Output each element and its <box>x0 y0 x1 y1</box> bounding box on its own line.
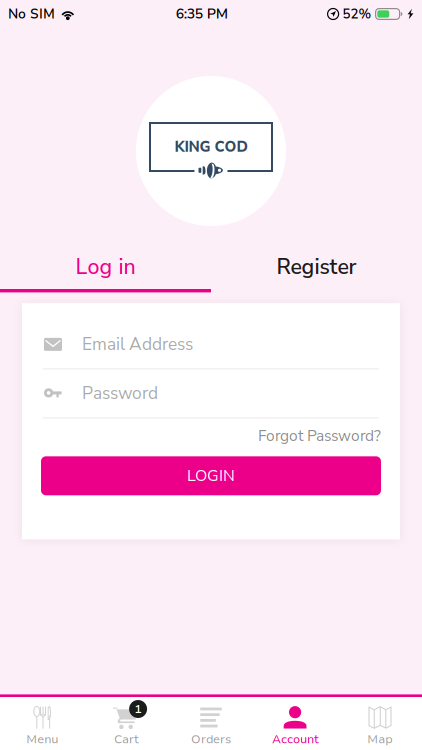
staticText: Menu <box>26 731 58 747</box>
button[interactable]: Forgot Password? <box>258 418 400 453</box>
button[interactable]: Register <box>211 245 422 289</box>
button[interactable]: Orders <box>169 706 253 744</box>
staticText: Account <box>272 731 319 747</box>
staticText: 52% <box>343 5 372 23</box>
staticText: Map <box>367 731 392 747</box>
staticText: Cart <box>114 731 139 747</box>
staticText: No SIM <box>8 5 55 23</box>
button[interactable]: LOGIN <box>41 456 381 495</box>
staticText: LOGIN <box>187 465 235 487</box>
staticText: Orders <box>191 731 231 747</box>
staticText: 1 <box>135 701 142 717</box>
button[interactable]: 1 <box>84 706 169 744</box>
staticText: Forgot Password? <box>258 425 381 446</box>
staticText: Register <box>276 252 356 282</box>
staticText: KING COD <box>174 137 247 157</box>
staticText: Log in <box>75 252 135 282</box>
button[interactable]: Menu <box>0 706 84 744</box>
button[interactable]: Account <box>253 706 338 744</box>
staticText: Email Address <box>82 333 193 356</box>
staticText: 6:35 PM <box>176 4 228 24</box>
button[interactable]: Map <box>338 706 422 744</box>
button[interactable]: Log in <box>0 245 211 289</box>
staticText: Password <box>82 382 158 405</box>
